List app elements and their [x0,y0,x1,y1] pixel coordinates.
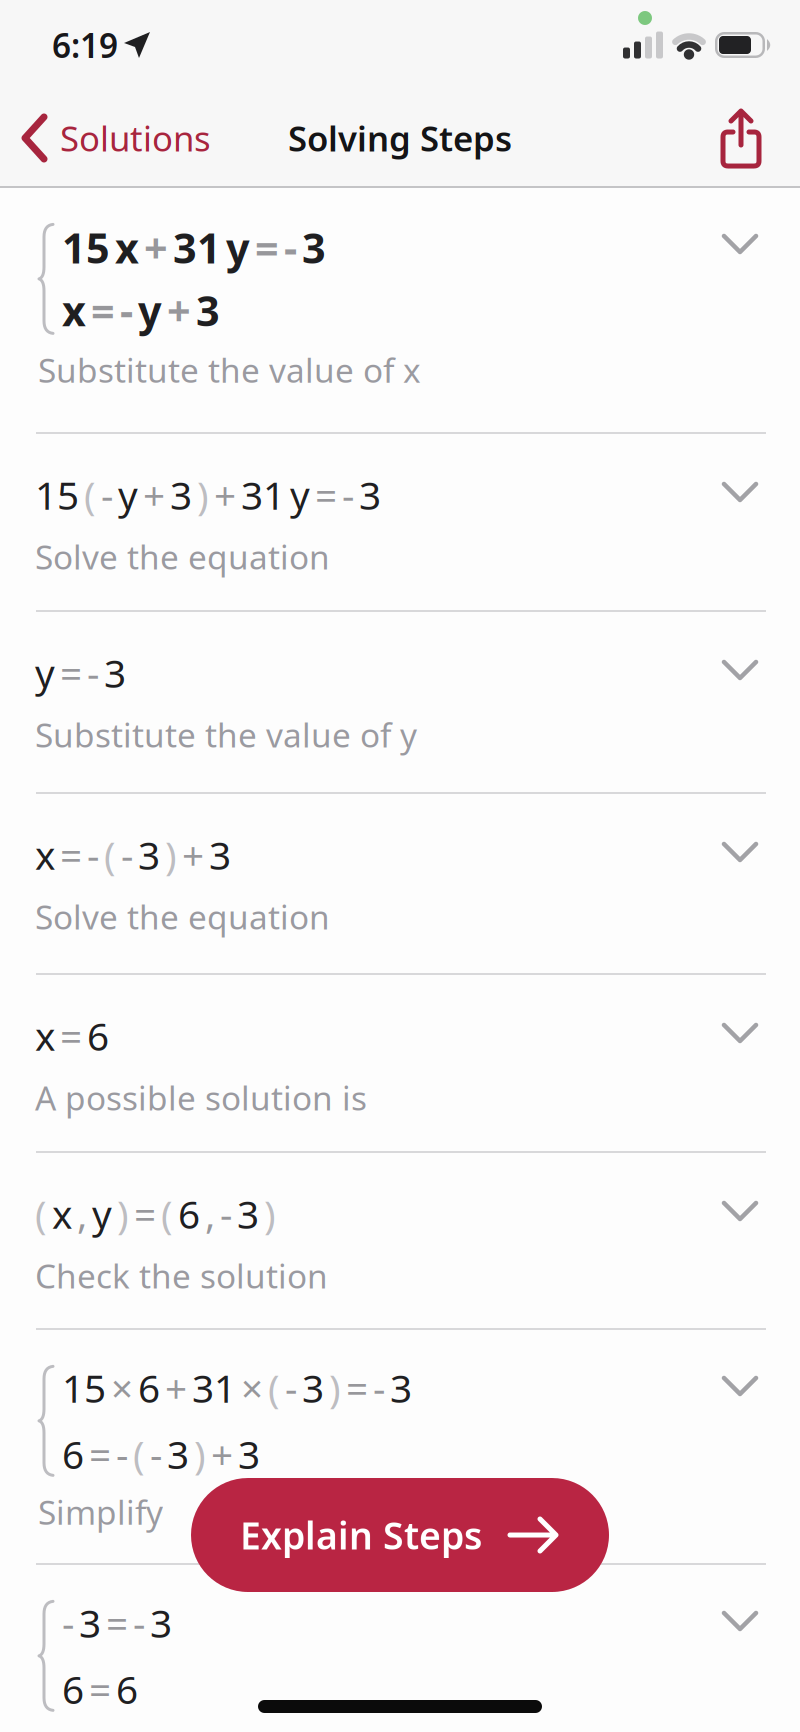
staticText: ) [329,1362,341,1413]
staticText: 3 [209,829,231,880]
staticText: - [87,829,99,880]
staticText: 3 [302,220,326,275]
staticText: 3 [196,283,220,338]
staticText: 31 [241,469,285,520]
staticText: 3 [150,1597,172,1648]
button[interactable]: 15 [0,434,800,610]
staticText: ( [84,469,96,520]
staticText: - [121,829,133,880]
staticText: + [214,469,236,520]
button[interactable]: - [0,1565,800,1732]
staticText: x [35,1010,55,1061]
staticText: = [89,1663,111,1715]
staticText: - [133,1597,145,1648]
staticText: Substitute the value of y [35,712,417,757]
staticText: 3 [167,1428,189,1480]
staticText: A possible solution is [35,1075,367,1120]
staticText: + [211,1428,233,1480]
staticText: Simplify [38,1490,163,1534]
staticText: - [87,647,99,698]
staticText: 6:19 [52,23,118,67]
staticText: 3 [359,469,381,520]
staticText: ( [133,1428,145,1480]
staticText: 3 [390,1362,412,1413]
staticText: + [144,220,168,275]
staticText: 15 [62,1362,106,1413]
staticText: = [91,283,115,338]
button[interactable]: Explain Steps [191,1478,609,1592]
staticText: = [255,220,279,275]
staticText: - [284,220,297,275]
staticText: - [101,469,113,520]
staticText: ) [197,469,209,520]
staticText: = [60,1010,82,1061]
staticText: y [226,220,250,275]
staticText: y [290,469,310,520]
staticText: = [89,1428,111,1480]
staticText: - [116,1428,128,1480]
staticText: × [241,1362,263,1413]
staticText: Solve the equation [35,534,330,579]
staticText: , [205,1188,215,1239]
staticText: , [77,1188,87,1239]
button[interactable]: 15 [0,188,800,432]
staticText: = [134,1188,156,1239]
staticText: 3 [302,1362,324,1413]
staticText: 6 [178,1188,200,1239]
staticText: y [35,647,55,698]
staticText: x [35,829,55,880]
staticText: 3 [170,469,192,520]
staticText: 6 [62,1428,84,1480]
staticText: + [182,829,204,880]
staticText: - [62,1597,74,1648]
staticText: Solve the equation [35,894,330,939]
staticText: ( [161,1188,173,1239]
staticText: = [60,647,82,698]
button[interactable]: y [0,612,800,792]
staticText: Solving Steps [288,115,512,161]
staticText: Solutions [60,115,211,161]
staticText: y [138,283,162,338]
staticText: - [120,283,133,338]
staticText: x [115,220,139,275]
staticText: ) [264,1188,276,1239]
staticText: 15 [62,220,110,275]
staticText: x [52,1188,72,1239]
staticText: 3 [138,829,160,880]
button[interactable]: 15 [0,1330,800,1563]
staticText: 3 [237,1188,259,1239]
staticText: Check the solution [35,1253,328,1298]
staticText: × [111,1362,133,1413]
staticText: + [167,283,191,338]
staticText: 6 [116,1663,138,1715]
staticText: ( [35,1188,47,1239]
staticText: - [285,1362,297,1413]
staticText: ( [268,1362,280,1413]
button[interactable]: Solutions [0,115,211,161]
staticText: - [373,1362,385,1413]
staticText: y [118,469,138,520]
staticText: 3 [104,647,126,698]
staticText: + [143,469,165,520]
button[interactable]: x [0,975,800,1151]
button[interactable]: x [0,794,800,973]
button[interactable]: ( [0,1153,800,1328]
staticText: ) [117,1188,129,1239]
staticText: - [220,1188,232,1239]
staticText: ) [165,829,177,880]
staticText: ) [194,1428,206,1480]
staticText: 15 [35,469,79,520]
staticText: = [106,1597,128,1648]
staticText: - [342,469,354,520]
staticText: ( [104,829,116,880]
staticText: = [346,1362,368,1413]
button[interactable]: Share [722,108,800,168]
staticText: 3 [79,1597,101,1648]
staticText: 3 [238,1428,260,1480]
staticText: y [92,1188,112,1239]
staticText: 31 [192,1362,236,1413]
staticText: 6 [62,1663,84,1715]
staticText: - [150,1428,162,1480]
staticText: 31 [173,220,221,275]
staticText: Substitute the value of x [38,348,421,392]
